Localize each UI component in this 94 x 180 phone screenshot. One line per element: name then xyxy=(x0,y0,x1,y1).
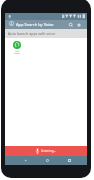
staticText: WhatsApp xyxy=(15,51,20,52)
button[interactable]: Search xyxy=(67,20,75,29)
staticText: Listening... xyxy=(41,149,56,153)
staticText: Auto launch apps with voice xyxy=(8,31,56,36)
button[interactable]: App logo xyxy=(7,20,15,29)
staticText: Messenger xyxy=(14,53,20,55)
staticText: App Search by Voice xyxy=(16,22,54,27)
button[interactable]: Recent apps xyxy=(61,156,77,165)
button[interactable]: WhatsApp xyxy=(8,41,26,55)
button[interactable]: Home xyxy=(39,156,55,165)
button[interactable]: Listening... xyxy=(5,146,87,156)
button[interactable]: Settings xyxy=(75,20,83,29)
button[interactable]: Back xyxy=(17,156,33,165)
